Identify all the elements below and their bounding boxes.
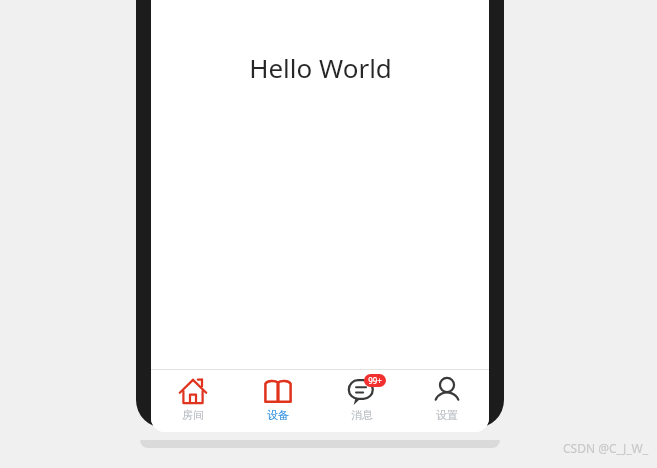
staticText: 房间 xyxy=(182,408,204,422)
button[interactable]: 房间 xyxy=(151,370,235,432)
button[interactable]: 设备 xyxy=(236,370,320,432)
button[interactable]: 消息 xyxy=(320,370,404,432)
staticText: 设置 xyxy=(436,408,458,422)
staticText: 99+ xyxy=(368,375,382,386)
staticText: Hello World xyxy=(249,50,392,85)
staticText: 设备 xyxy=(267,408,289,422)
staticText: 消息 xyxy=(351,408,373,422)
staticText: CSDN @C_J_W_ xyxy=(563,440,649,456)
button[interactable]: 设置 xyxy=(405,370,489,432)
